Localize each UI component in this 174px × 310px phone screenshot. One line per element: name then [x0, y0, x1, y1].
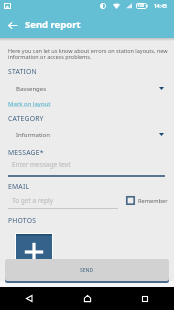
button[interactable]: Mark on layout	[8, 100, 51, 108]
staticText: CATEGORY	[8, 114, 44, 123]
button[interactable]: Back	[0, 13, 24, 37]
button[interactable]: Enter message text	[12, 160, 71, 169]
staticText: EMAIL	[8, 182, 30, 191]
staticText: Here you can let us know about errors on…	[8, 47, 169, 61]
button[interactable]: To get a reply	[12, 196, 54, 205]
staticText: PHOTOS	[8, 216, 37, 225]
staticText: 100	[137, 3, 145, 9]
staticText: 14:45	[154, 3, 167, 10]
staticText: Enter message text	[12, 160, 71, 169]
staticText: Information	[16, 131, 50, 139]
button[interactable]: Information	[8, 130, 164, 139]
button[interactable]: Bassenges	[8, 84, 164, 93]
staticText: STATION	[8, 67, 37, 76]
staticText: Send report	[25, 18, 81, 31]
staticText: To get a reply	[12, 196, 54, 205]
staticText: Remember	[138, 197, 168, 205]
button[interactable]: Remember	[126, 196, 168, 205]
staticText: Bassenges	[16, 85, 47, 93]
staticText: SEND	[80, 267, 94, 274]
button[interactable]: Back	[0, 287, 58, 310]
staticText: Mark on layout	[8, 100, 51, 108]
button[interactable]: SEND	[5, 259, 169, 281]
button[interactable]: Home	[58, 287, 116, 310]
button[interactable]: Add photo	[16, 234, 52, 270]
button[interactable]: Recents	[116, 287, 174, 310]
staticText: MESSAGE*	[8, 148, 44, 157]
